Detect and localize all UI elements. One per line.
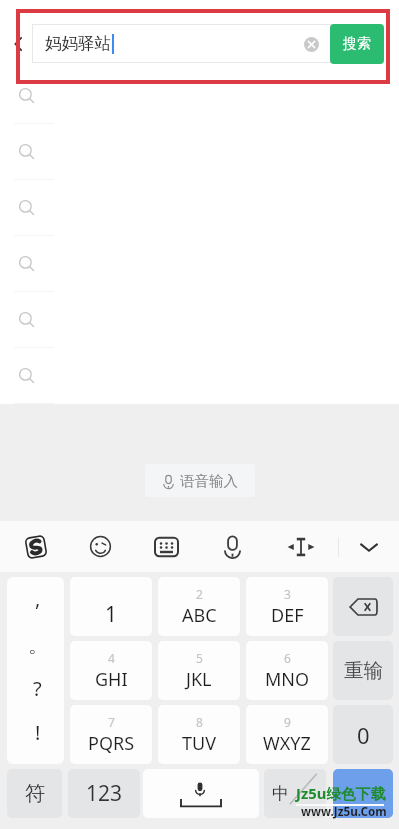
button[interactable]: 搜索: [330, 24, 384, 64]
button[interactable]: [333, 769, 393, 818]
staticText: ,: [35, 585, 41, 609]
button[interactable]: Backspace: [333, 577, 393, 636]
button[interactable]: Voice input: [205, 521, 260, 572]
staticText: 中: [272, 783, 289, 804]
staticText: 8: [196, 714, 203, 730]
staticText: JKL: [186, 667, 212, 692]
button[interactable]: 符: [7, 769, 62, 818]
staticText: 1: [105, 600, 118, 629]
staticText: 重输: [344, 658, 383, 683]
button[interactable]: 0: [333, 705, 393, 764]
button[interactable]: [0, 366, 399, 422]
staticText: ?: [33, 675, 42, 699]
staticText: Jz5u绿色下载: [296, 783, 386, 803]
button[interactable]: Emoji: [73, 521, 128, 572]
staticText: 2: [196, 586, 203, 602]
button[interactable]: Move cursor: [273, 521, 328, 572]
staticText: 妈妈驿站: [45, 33, 111, 54]
button[interactable]: 8: [158, 705, 240, 764]
staticText: GHI: [95, 667, 128, 692]
button[interactable]: 2: [158, 577, 240, 636]
staticText: 9: [284, 714, 291, 730]
staticText: MNO: [265, 667, 310, 692]
button[interactable]: 妈妈驿站: [32, 24, 332, 63]
button[interactable]: 3: [246, 577, 328, 636]
staticText: 7: [108, 714, 115, 730]
button[interactable]: Back: [4, 24, 32, 64]
staticText: ABC: [182, 603, 217, 628]
staticText: DEF: [271, 603, 304, 628]
staticText: 搜索: [343, 35, 371, 53]
staticText: www.Jz5u.Com: [301, 803, 387, 819]
staticText: 0: [357, 720, 370, 750]
button[interactable]: 5: [158, 641, 240, 700]
staticText: 语音输入: [180, 472, 238, 490]
button[interactable]: Sogou input: [8, 521, 63, 572]
staticText: 3: [284, 586, 291, 602]
staticText: 4: [108, 650, 115, 666]
button[interactable]: 语音输入: [145, 464, 255, 497]
button[interactable]: 123: [68, 769, 140, 818]
button[interactable]: 9: [246, 705, 328, 764]
button[interactable]: ,: [7, 577, 64, 764]
button[interactable]: Keyboard layout: [139, 521, 194, 572]
staticText: PQRS: [88, 731, 135, 756]
button[interactable]: 中: [264, 769, 326, 818]
button[interactable]: 4: [70, 641, 152, 700]
staticText: 5: [196, 650, 203, 666]
button[interactable]: 重输: [333, 641, 393, 700]
button[interactable]: Space: [143, 769, 259, 818]
button[interactable]: 7: [70, 705, 152, 764]
button[interactable]: 6: [246, 641, 328, 700]
staticText: 符: [25, 781, 45, 806]
button[interactable]: Hide keyboard: [341, 521, 396, 572]
button[interactable]: 1: [70, 577, 152, 636]
button[interactable]: Clear text: [298, 31, 324, 57]
staticText: TUV: [182, 731, 216, 756]
staticText: !: [35, 719, 41, 743]
staticText: 123: [86, 779, 123, 808]
staticText: WXYZ: [263, 731, 311, 756]
staticText: 6: [284, 650, 291, 666]
staticText: 。: [28, 633, 48, 657]
other: Backspace: [349, 597, 377, 617]
